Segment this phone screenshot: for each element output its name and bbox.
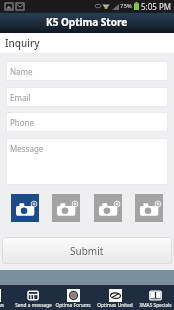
button[interactable]: Add photo [135,194,163,222]
staticText: Send a message [15,302,52,309]
staticText: Inquiry [5,36,40,50]
staticText: XMAS Specials [139,302,172,309]
button[interactable]: XMAS Specials [135,285,174,310]
button[interactable]: Add photo [94,194,122,222]
button[interactable]: Optimas United [95,285,135,310]
staticText: K5 Optima Store [46,15,128,29]
staticText: Email [10,92,31,103]
button[interactable]: Name [6,61,168,81]
button[interactable]: Phone [6,112,168,132]
button[interactable]: Optima Forums [53,285,93,310]
staticText: 5:05 PM [141,1,172,12]
staticText: Name [10,66,33,77]
button[interactable]: Add photo [11,194,39,222]
staticText: Submit [70,244,104,258]
button[interactable]: Add photo [52,194,80,222]
button[interactable]: Submit [2,237,172,264]
staticText: Optima Forums [55,302,91,309]
button[interactable]: Message [6,138,168,185]
button[interactable]: Email [6,87,168,107]
staticText: Message [10,143,44,154]
button[interactable]: Send a message [14,285,53,310]
button[interactable]: Reviews [0,285,14,310]
staticText: Reviews [0,302,4,309]
staticText: Phone [10,117,35,128]
staticText: 75% [120,2,132,10]
staticText: Optimas United [97,302,133,309]
